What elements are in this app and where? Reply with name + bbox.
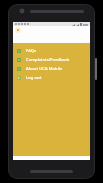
button[interactable]: Open navigation menu (16, 28, 20, 32)
button[interactable]: Log out (13, 73, 90, 82)
button[interactable]: Complaints/Feedback (13, 55, 90, 64)
staticText: About UCA Mobile (26, 66, 63, 71)
staticText: Complaints/Feedback (26, 57, 70, 62)
staticText: FAQs (26, 48, 37, 53)
staticText: Log out (26, 75, 42, 80)
button[interactable]: FAQs (13, 46, 90, 55)
button[interactable]: About UCA Mobile (13, 64, 90, 73)
